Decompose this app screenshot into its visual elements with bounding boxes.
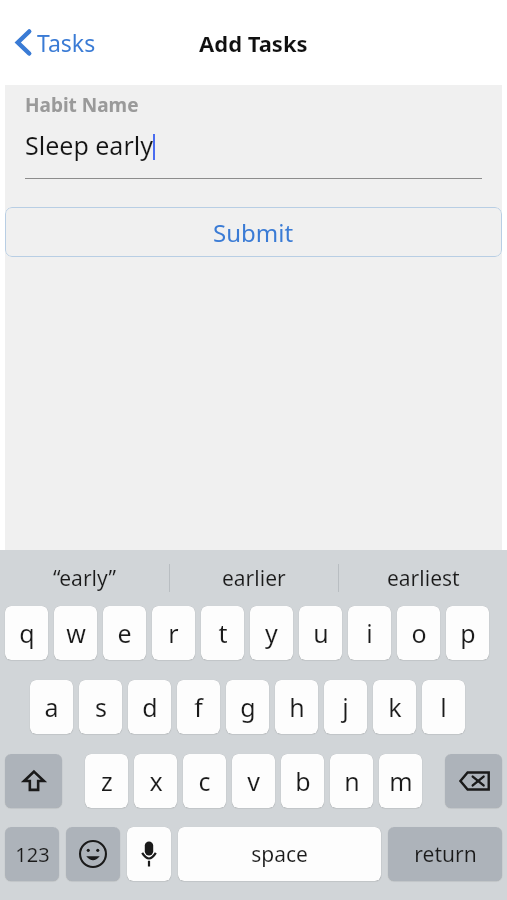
button[interactable]: j (324, 680, 367, 734)
button[interactable]: 123 (5, 827, 59, 881)
staticText: w (66, 616, 86, 650)
button[interactable]: k (373, 680, 416, 734)
staticText: Add Tasks (199, 28, 308, 58)
button[interactable]: Tasks (12, 21, 100, 64)
staticText: Submit (213, 216, 294, 249)
button[interactable]: earliest (339, 550, 507, 606)
staticText: n (344, 764, 360, 798)
staticText: Habit Name (25, 92, 139, 118)
staticText: t (218, 616, 228, 650)
button[interactable]: x (134, 754, 177, 808)
button[interactable]: b (281, 754, 324, 808)
button[interactable]: Dictation (127, 827, 171, 881)
staticText: q (19, 616, 35, 650)
staticText: space (251, 840, 308, 869)
staticText: i (366, 616, 373, 650)
button[interactable]: Shift (5, 754, 62, 808)
button[interactable]: z (85, 754, 128, 808)
button[interactable]: Emoji (66, 827, 120, 881)
staticText: Tasks (37, 27, 96, 58)
staticText: 123 (15, 841, 50, 868)
button[interactable]: t (201, 606, 244, 660)
button[interactable]: y (250, 606, 293, 660)
staticText: return (414, 840, 477, 869)
button[interactable]: a (30, 680, 73, 734)
button[interactable]: space (178, 827, 381, 881)
button[interactable]: w (54, 606, 97, 660)
staticText: earlier (222, 564, 286, 593)
staticText: j (342, 690, 349, 724)
staticText: y (265, 616, 278, 650)
button[interactable]: e (103, 606, 146, 660)
button[interactable]: return (388, 827, 502, 881)
button[interactable]: i (348, 606, 391, 660)
button[interactable]: “early” (0, 550, 169, 606)
staticText: earliest (387, 564, 460, 593)
button[interactable]: c (183, 754, 226, 808)
staticText: e (117, 616, 132, 650)
staticText: z (101, 764, 113, 798)
button[interactable]: m (379, 754, 422, 808)
staticText: a (44, 690, 59, 724)
button[interactable]: o (397, 606, 440, 660)
button[interactable]: r (152, 606, 195, 660)
button[interactable]: g (226, 680, 269, 734)
staticText: r (168, 616, 179, 650)
staticText: o (411, 616, 427, 650)
button[interactable]: earlier (170, 550, 338, 606)
staticText: Sleep early (25, 128, 153, 162)
button[interactable]: s (79, 680, 122, 734)
button[interactable]: Submit (5, 207, 502, 257)
button[interactable]: n (330, 754, 373, 808)
button[interactable]: p (446, 606, 489, 660)
staticText: u (313, 616, 329, 650)
staticText: l (440, 690, 447, 724)
staticText: h (289, 690, 305, 724)
button[interactable]: f (177, 680, 220, 734)
button[interactable]: Backspace (445, 754, 502, 808)
staticText: d (142, 690, 158, 724)
button[interactable]: v (232, 754, 275, 808)
staticText: x (149, 764, 163, 798)
staticText: f (194, 690, 203, 724)
staticText: s (95, 690, 107, 724)
staticText: g (240, 690, 256, 724)
staticText: c (198, 764, 211, 798)
button[interactable]: h (275, 680, 318, 734)
staticText: k (388, 690, 402, 724)
button[interactable]: u (299, 606, 342, 660)
staticText: “early” (53, 564, 117, 593)
button[interactable]: q (5, 606, 48, 660)
staticText: v (247, 764, 260, 798)
button[interactable]: Sleep early (25, 128, 482, 162)
button[interactable]: d (128, 680, 171, 734)
staticText: m (389, 764, 413, 798)
button[interactable]: l (422, 680, 465, 734)
staticText: p (460, 616, 476, 650)
staticText: b (295, 764, 311, 798)
